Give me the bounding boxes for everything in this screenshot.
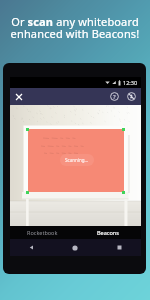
- button[interactable]: Beacons: [75, 226, 141, 239]
- button[interactable]: Help: [106, 88, 123, 105]
- button[interactable]: Close: [10, 88, 27, 105]
- staticText: 12:30: [123, 79, 138, 86]
- staticText: Beacons: [97, 229, 119, 236]
- button[interactable]: Rocketbook: [10, 226, 75, 239]
- button[interactable]: Back: [10, 239, 53, 256]
- button[interactable]: Disable flash: [123, 88, 140, 105]
- staticText: ?: [113, 93, 116, 101]
- staticText: Rocketbook: [27, 229, 58, 236]
- button[interactable]: Scanning...: [60, 154, 94, 166]
- button[interactable]: Home: [53, 239, 97, 256]
- staticText: Scanning...: [65, 157, 89, 163]
- button[interactable]: Recent apps: [97, 239, 141, 256]
- staticText: Or scan any whiteboard enhanced with Bea…: [6, 14, 144, 41]
